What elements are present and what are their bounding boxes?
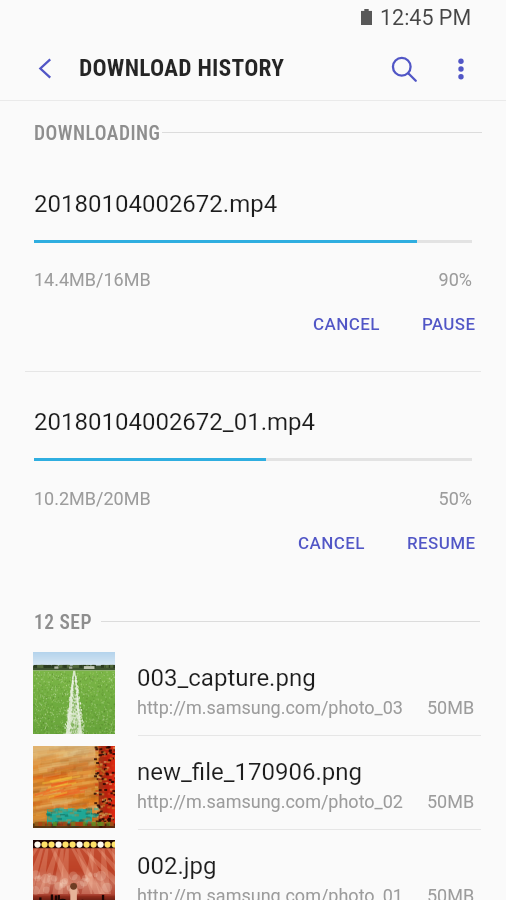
staticText: http://m.samsung.com/photo_03 [137,697,403,718]
button[interactable]: CANCEL [286,525,377,561]
staticText: PAUSE [422,314,476,334]
button[interactable]: 003_capture.png [0,651,506,745]
staticText: 20180104002672.mp4 [34,190,278,218]
staticText: 50MB [427,697,475,718]
staticText: CANCEL [313,314,380,334]
staticText: http://m.samsung.com/photo_02 [137,791,403,812]
staticText: 10.2MB/20MB [34,488,151,509]
staticText: 90% [380,269,472,290]
button[interactable]: 002.jpg [0,839,506,900]
button[interactable]: new_file_170906.png [0,745,506,839]
button[interactable]: Search [378,43,430,95]
button[interactable]: Navigate up [18,43,70,95]
staticText: DOWNLOAD HISTORY [79,54,285,82]
staticText: DOWNLOADING [34,122,161,145]
button[interactable]: PAUSE [410,306,488,342]
staticText: 14.4MB/16MB [34,269,151,290]
staticText: http://m.samsung.com/photo_01 [137,885,403,900]
staticText: 50MB [427,791,475,812]
staticText: 50MB [427,885,475,900]
staticText: CANCEL [298,533,365,553]
staticText: new_file_170906.png [137,758,362,786]
staticText: 50% [380,488,472,509]
staticText: 002.jpg [137,852,217,880]
staticText: 003_capture.png [137,664,316,692]
staticText: 12 SEP [34,611,92,634]
staticText: 20180104002672_01.mp4 [34,408,315,436]
button[interactable]: RESUME [395,525,488,561]
staticText: RESUME [407,533,476,553]
button[interactable]: CANCEL [301,306,392,342]
staticText: 12:45 PM [380,5,472,30]
button[interactable]: More options [435,43,487,95]
